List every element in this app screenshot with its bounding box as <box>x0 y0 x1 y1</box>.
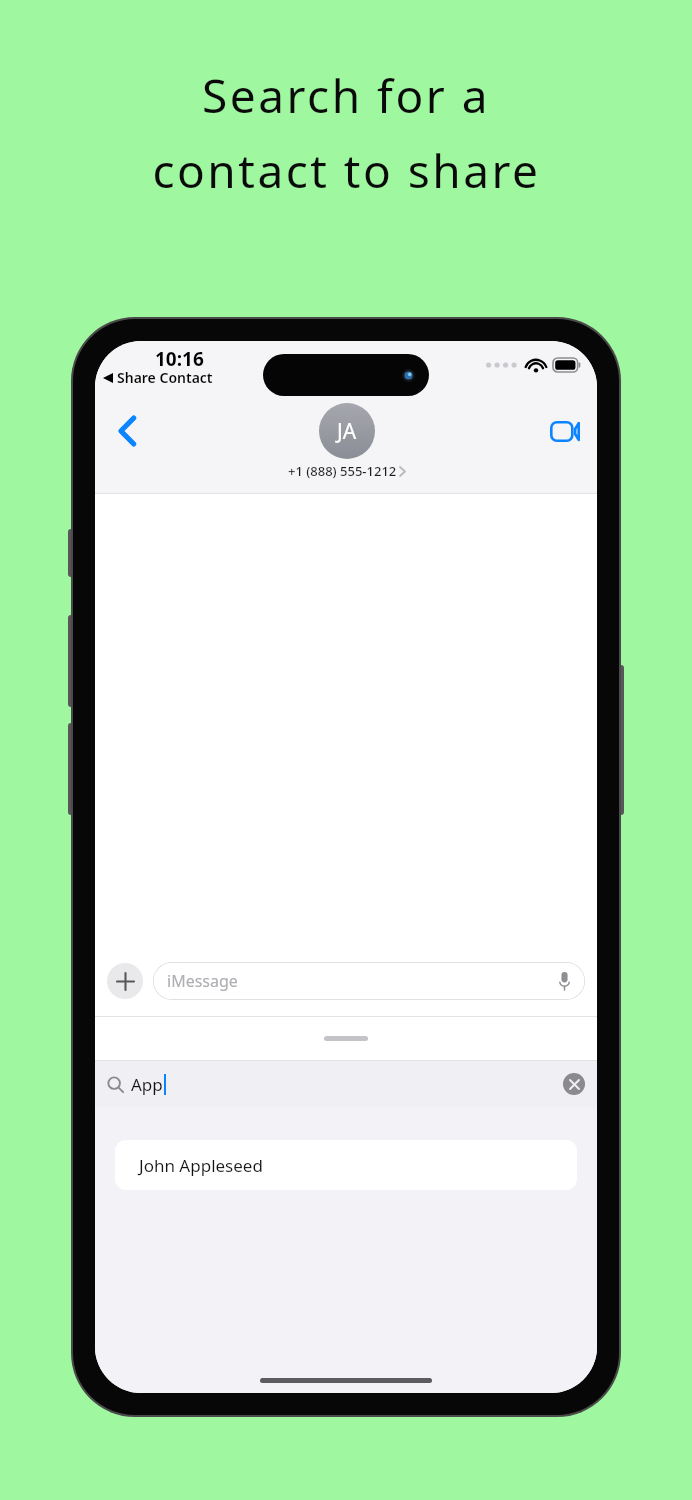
staticText: John Appleseed <box>139 1154 263 1177</box>
staticText: +1 (888) 555-1212 <box>288 462 397 480</box>
button[interactable]: John Appleseed <box>115 1140 577 1190</box>
button[interactable]: Back <box>103 407 151 455</box>
button[interactable]: FaceTime video call <box>541 407 589 455</box>
button[interactable]: iMessage <box>153 962 585 1000</box>
button[interactable]: Clear search <box>563 1073 585 1095</box>
button[interactable]: App <box>95 1061 597 1107</box>
button[interactable]: Add attachment <box>107 963 143 999</box>
staticText: iMessage <box>167 970 238 992</box>
staticText: Search for a <box>202 64 490 127</box>
button[interactable]: Dictate <box>553 970 575 992</box>
staticText: 10:16 <box>155 346 204 372</box>
staticText: JA <box>337 417 357 446</box>
staticText: App <box>131 1073 163 1096</box>
staticText: Share Contact <box>117 368 213 387</box>
button[interactable]: JA <box>288 403 405 480</box>
staticText: contact to share <box>152 139 541 202</box>
